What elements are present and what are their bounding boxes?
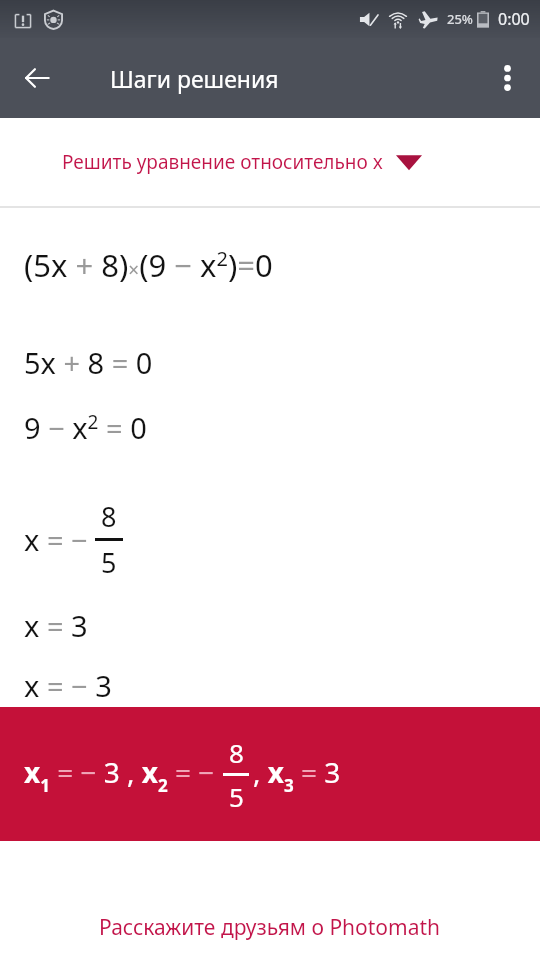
staticText: 0:00: [498, 8, 530, 30]
staticText: Шаги решения: [110, 63, 279, 94]
staticText: Решить уравнение относительно x: [62, 149, 383, 175]
staticText: 8: [229, 735, 244, 770]
staticText: 5: [101, 544, 117, 581]
staticText: 5: [229, 779, 244, 814]
button[interactable]: Назад: [10, 51, 64, 105]
button[interactable]: Расскажите друзьям о Photomath: [0, 913, 540, 942]
staticText: (5x + 8)×(9 − x2)=0: [24, 244, 273, 286]
staticText: 25%: [447, 10, 473, 28]
staticText: x = 3: [24, 606, 88, 645]
staticText: x = − 3: [24, 666, 112, 705]
staticText: x1 = − 3 , x2 = −: [24, 753, 215, 797]
staticText: 9 − x2 = 0: [24, 408, 147, 447]
staticText: 5x + 8 = 0: [24, 343, 153, 382]
button[interactable]: Ещё: [482, 53, 532, 103]
button[interactable]: x1 = − 3 , x2 = −: [0, 707, 540, 841]
staticText: , x3 = 3: [253, 753, 341, 797]
staticText: Расскажите друзьям о Photomath: [99, 913, 441, 942]
staticText: 8: [101, 498, 117, 535]
button[interactable]: Решить уравнение относительно x: [0, 118, 540, 206]
staticText: x = −: [24, 520, 88, 559]
